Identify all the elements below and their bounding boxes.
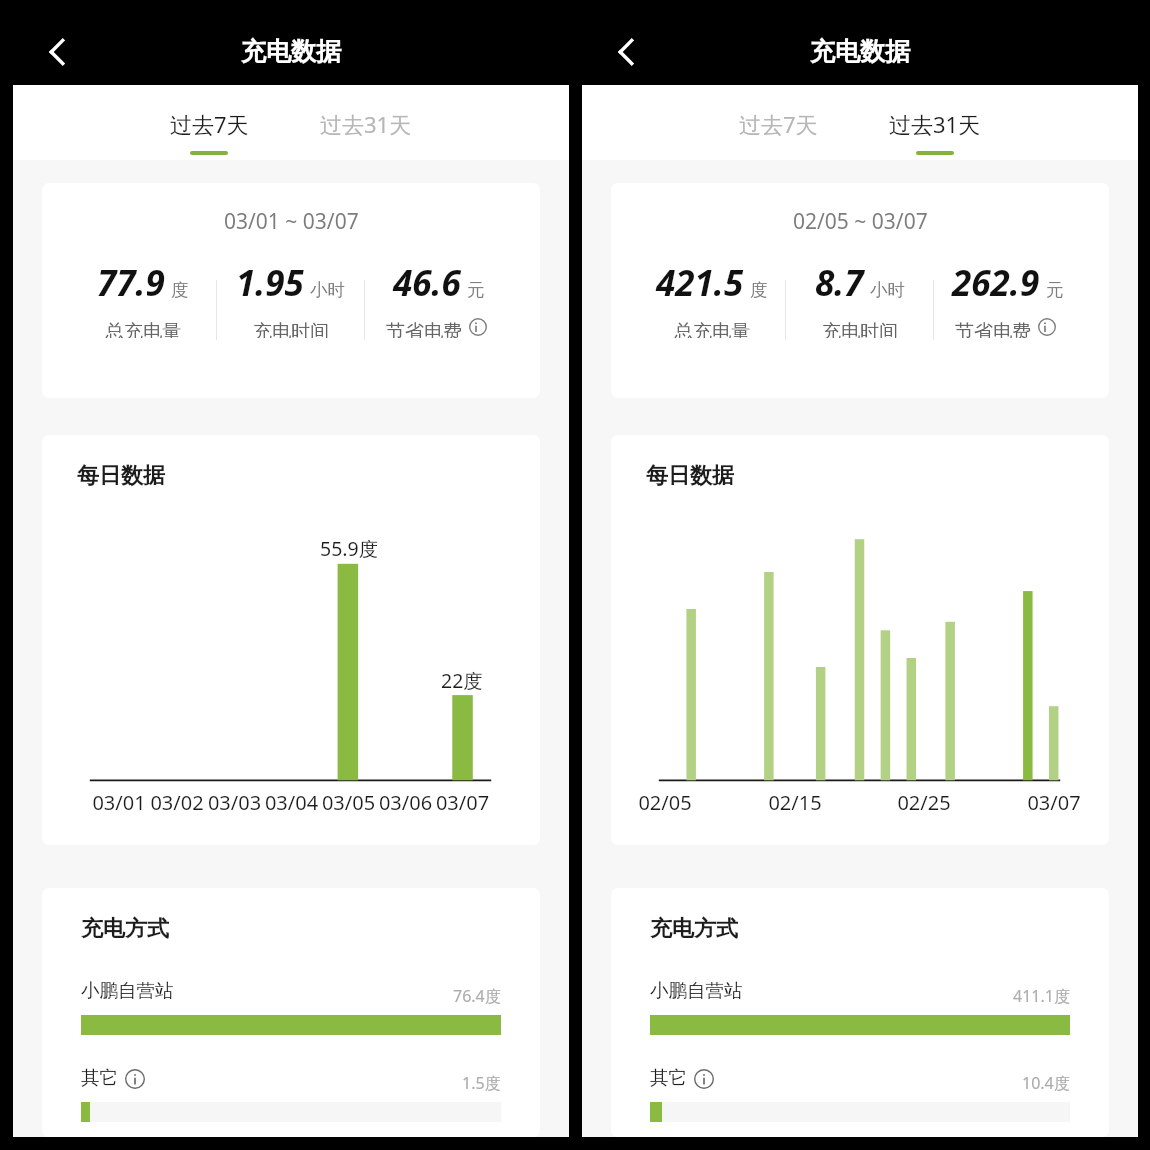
staticText: 02/15 (745, 789, 845, 816)
staticText: 03/03 (206, 789, 263, 816)
staticText: 每日数据 (77, 462, 165, 490)
staticText: 03/07 (1004, 789, 1104, 816)
button[interactable]: 节省电费 (386, 320, 491, 338)
staticText: 充电方式 (650, 915, 738, 943)
button[interactable]: 充电时间 (253, 320, 329, 338)
button[interactable]: 总充电量 (674, 320, 750, 338)
other: Info (467, 318, 489, 336)
staticText: 过去7天 (739, 109, 818, 139)
staticText: 其它 (81, 1066, 118, 1089)
other: Info (694, 1069, 714, 1089)
button[interactable]: 过去31天 (880, 85, 990, 160)
button[interactable]: 总充电量 (105, 320, 181, 338)
staticText: 262.9 (952, 259, 1040, 307)
staticText: 节省电费 (955, 320, 1031, 338)
staticText: 8.7 (815, 259, 864, 307)
staticText: 充电方式 (81, 915, 169, 943)
button[interactable]: 过去31天 (311, 85, 421, 160)
button[interactable]: 其它 (81, 1064, 501, 1122)
staticText: 77.9 (97, 259, 165, 307)
staticText: 小时 (870, 279, 905, 301)
button[interactable]: 过去7天 (154, 85, 264, 160)
staticText: 03/04 (263, 789, 320, 816)
staticText: 小鹏自营站 (650, 979, 743, 1002)
staticText: 过去7天 (170, 109, 249, 139)
staticText: 03/07 (434, 789, 491, 816)
staticText: 55.9度 (320, 535, 379, 562)
staticText: 过去31天 (320, 109, 412, 139)
staticText: 每日数据 (646, 462, 734, 490)
staticText: 03/01 (90, 789, 148, 816)
other: Info (125, 1069, 145, 1089)
staticText: 1.95 (236, 259, 304, 307)
button[interactable]: 其它 (650, 1064, 1070, 1122)
staticText: 过去31天 (889, 109, 981, 139)
staticText: 总充电量 (105, 320, 181, 338)
staticText: 02/05 ~ 03/07 (793, 207, 928, 236)
other: Info (1036, 318, 1058, 336)
button[interactable]: 节省电费 (955, 320, 1060, 338)
staticText: 02/25 (874, 789, 974, 816)
staticText: 22度 (441, 667, 483, 694)
staticText: 421.5 (656, 259, 744, 307)
staticText: 03/06 (377, 789, 434, 816)
staticText: 02/05 (615, 789, 715, 816)
staticText: 充电数据 (810, 36, 910, 67)
staticText: 03/05 (320, 789, 377, 816)
staticText: 小时 (310, 279, 345, 301)
staticText: 03/02 (148, 789, 206, 816)
staticText: 元 (1046, 279, 1064, 301)
button[interactable]: 过去7天 (723, 85, 833, 160)
staticText: 充电数据 (241, 36, 341, 67)
staticText: 充电时间 (822, 320, 898, 338)
staticText: 节省电费 (386, 320, 462, 338)
button[interactable]: Back (25, 20, 89, 84)
staticText: 其它 (650, 1066, 687, 1089)
staticText: 03/01 ~ 03/07 (224, 207, 359, 236)
staticText: 46.6 (393, 259, 461, 307)
staticText: 度 (171, 279, 189, 301)
staticText: 充电时间 (253, 320, 329, 338)
button[interactable]: 小鹏自营站 (81, 977, 501, 1035)
button[interactable]: 充电时间 (822, 320, 898, 338)
staticText: 总充电量 (674, 320, 750, 338)
button[interactable]: Back (594, 20, 658, 84)
staticText: 411.1度 (1013, 985, 1070, 1007)
staticText: 1.5度 (462, 1072, 501, 1094)
staticText: 度 (750, 279, 768, 301)
staticText: 76.4度 (453, 985, 501, 1007)
button[interactable]: 小鹏自营站 (650, 977, 1070, 1035)
staticText: 元 (467, 279, 485, 301)
staticText: 10.4度 (1022, 1072, 1070, 1094)
staticText: 小鹏自营站 (81, 979, 174, 1002)
